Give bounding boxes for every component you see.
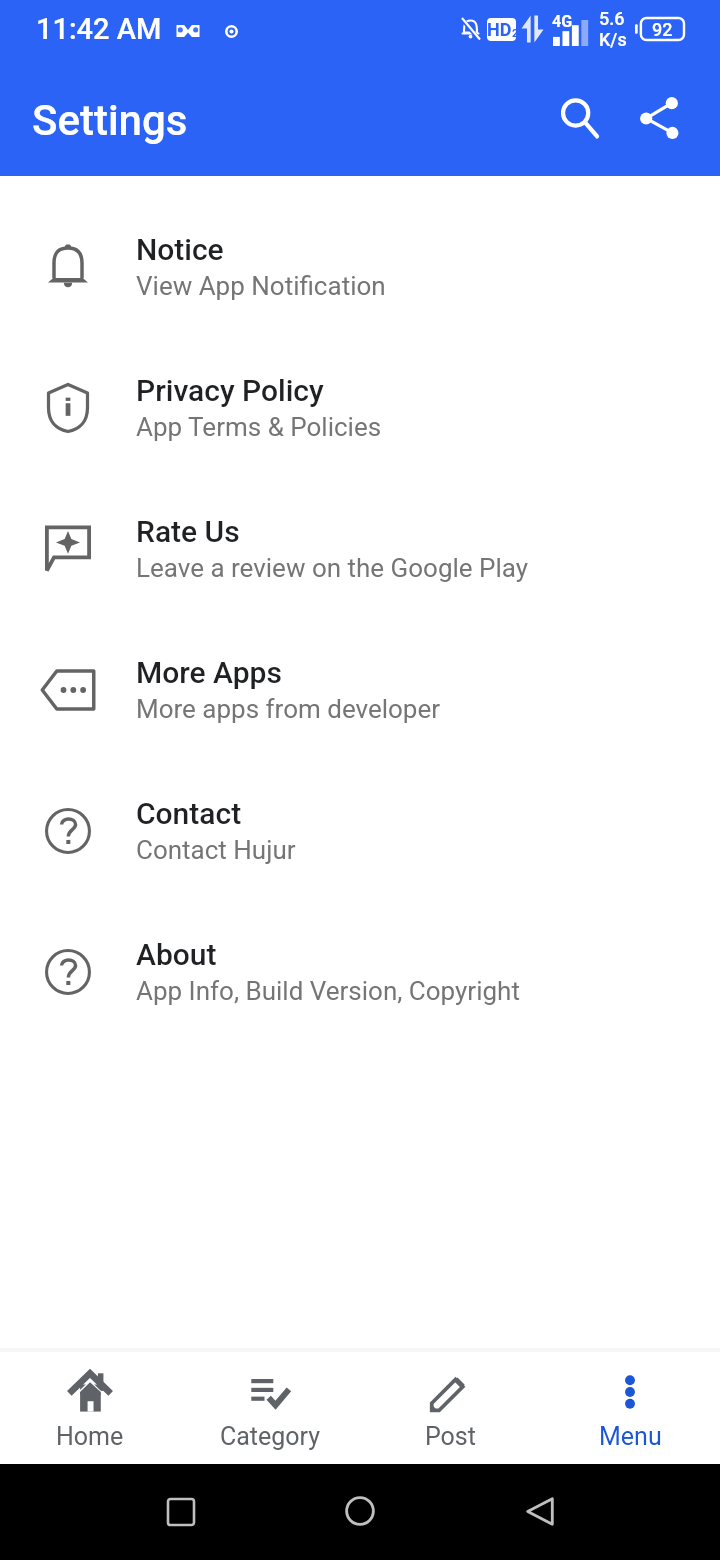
staticText: About (136, 937, 217, 972)
staticText: K/s (599, 29, 627, 50)
staticText: Settings (32, 96, 188, 145)
button[interactable]: Share (620, 78, 698, 156)
staticText: Home (56, 1422, 124, 1451)
button[interactable]: Rate Us (0, 478, 720, 619)
button[interactable]: Home (320, 1464, 400, 1560)
staticText: 5.6 (599, 8, 625, 29)
staticText: View App Notification (136, 271, 386, 301)
staticText: Privacy Policy (136, 373, 324, 408)
button[interactable]: Menu (540, 1352, 720, 1464)
staticText: More Apps (136, 655, 282, 690)
staticText: More apps from developer (136, 694, 441, 724)
staticText: Menu (599, 1422, 662, 1451)
button[interactable]: Privacy Policy (0, 337, 720, 478)
button[interactable]: Search (540, 78, 618, 156)
button[interactable]: Home (0, 1352, 180, 1464)
staticText: Post (425, 1422, 476, 1451)
staticText: App Info, Build Version, Copyright (136, 976, 520, 1006)
button[interactable]: More Apps (0, 619, 720, 760)
staticText: 2 (512, 27, 516, 40)
staticText: Contact Hujur (136, 835, 296, 865)
staticText: HD (487, 19, 512, 40)
staticText: 4G (552, 12, 573, 31)
button[interactable]: Contact (0, 760, 720, 901)
staticText: Rate Us (136, 514, 240, 549)
staticText: Category (220, 1422, 321, 1451)
button[interactable]: About (0, 901, 720, 1042)
staticText: Notice (136, 232, 224, 267)
button[interactable]: Post (360, 1352, 540, 1464)
staticText: 92 (652, 19, 673, 40)
button[interactable]: Notice (0, 196, 720, 337)
button[interactable]: Recent apps (141, 1464, 221, 1560)
staticText: Leave a review on the Google Play (136, 553, 529, 583)
button[interactable]: Category (180, 1352, 360, 1464)
staticText: App Terms & Policies (136, 412, 382, 442)
button[interactable]: Back (500, 1464, 580, 1560)
staticText: 11:42 AM (36, 12, 162, 46)
staticText: Contact (136, 796, 242, 831)
